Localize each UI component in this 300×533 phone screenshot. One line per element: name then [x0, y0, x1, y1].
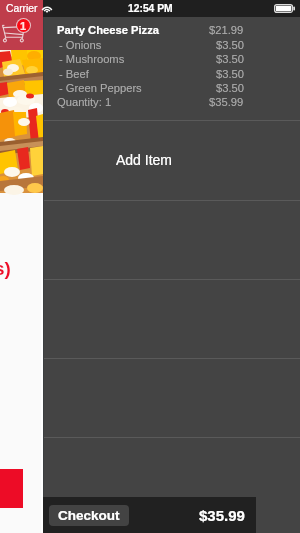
staticText: $21.99	[209, 24, 244, 37]
staticText: - Mushrooms	[59, 53, 125, 66]
staticText: $3.50	[216, 39, 244, 52]
staticText: $3.50	[216, 68, 244, 81]
staticText: 1	[20, 20, 27, 32]
staticText: $35.99	[199, 507, 245, 524]
button[interactable]: Checkout	[49, 505, 129, 526]
staticText: $3.50	[216, 82, 244, 95]
staticText: s)	[0, 258, 11, 279]
button[interactable]: Cart	[0, 0, 43, 50]
staticText: Checkout	[58, 508, 120, 523]
staticText: - Green Peppers	[59, 82, 142, 95]
staticText: $3.50	[216, 53, 244, 66]
staticText: - Beef	[59, 68, 89, 81]
staticText: Quantity: 1	[57, 96, 112, 109]
staticText: $35.99	[209, 96, 244, 109]
staticText: Carrier	[6, 3, 38, 15]
staticText: - Onions	[59, 39, 102, 52]
button[interactable]: Add Item	[43, 121, 300, 200]
staticText: 12:54 PM	[128, 3, 173, 15]
staticText: Party Cheese Pizza	[57, 24, 159, 37]
staticText: Add Item	[116, 152, 173, 168]
